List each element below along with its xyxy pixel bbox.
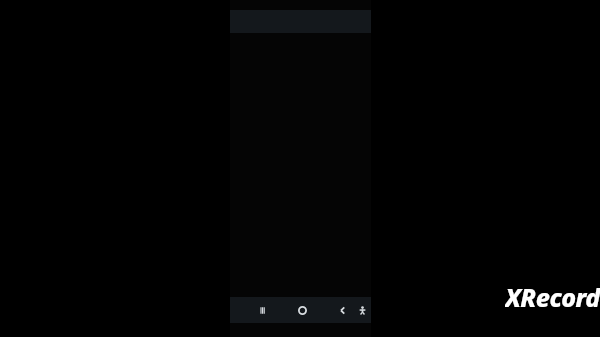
button[interactable]: Back xyxy=(333,301,351,319)
button[interactable]: Recents xyxy=(254,301,272,319)
button[interactable]: Home xyxy=(293,301,311,319)
button[interactable]: Accessibility xyxy=(353,301,371,319)
staticText: XRecorder xyxy=(505,280,600,308)
